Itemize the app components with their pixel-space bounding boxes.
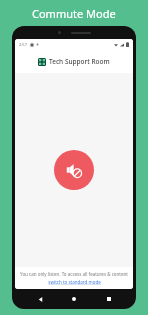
button[interactable]: Room icon — [15, 50, 133, 73]
staticText: You can only listen. To access all featu… — [20, 271, 128, 277]
button[interactable]: Recent apps — [102, 292, 116, 306]
button[interactable]: Back — [33, 292, 47, 306]
staticText: Commute Mode — [32, 6, 116, 21]
button[interactable]: switch to standard mode — [48, 279, 101, 285]
staticText: 2:57 — [19, 42, 27, 47]
staticText: switch to standard mode — [48, 279, 101, 285]
other: Room icon — [38, 58, 46, 66]
staticText: Tech Support Room — [49, 57, 110, 66]
button[interactable]: Home — [67, 292, 81, 306]
button[interactable]: Unmute microphone — [54, 150, 94, 190]
